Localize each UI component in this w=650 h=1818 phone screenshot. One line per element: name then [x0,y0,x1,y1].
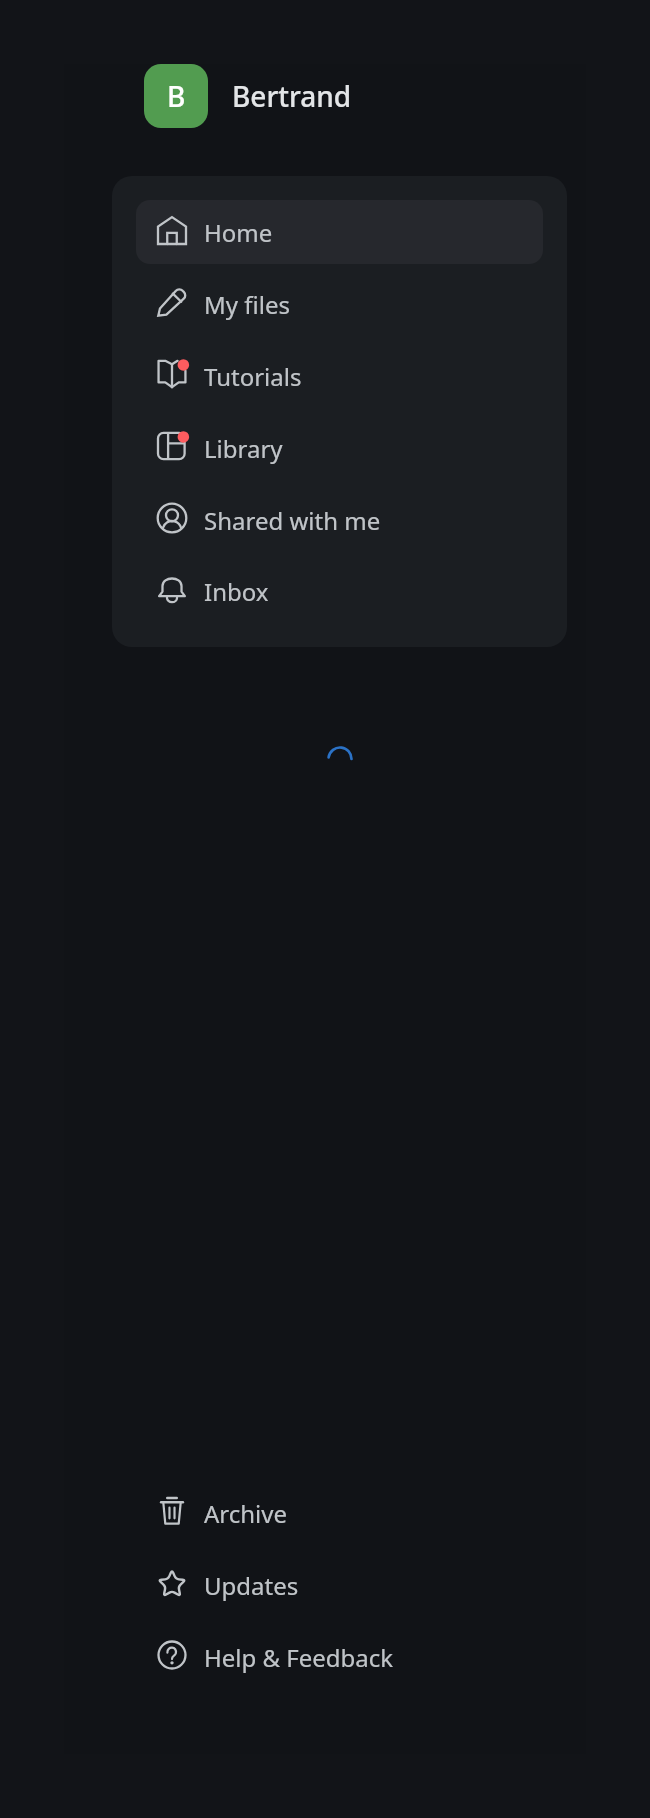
staticText: Tutorials [204,360,302,393]
button[interactable]: B [144,64,364,128]
button[interactable]: Inbox [136,560,543,623]
other: Loading [326,745,354,773]
staticText: Help & Feedback [204,1641,394,1674]
staticText: Bertrand [232,77,352,115]
button[interactable]: Library [136,416,543,480]
staticText: Updates [204,1569,299,1602]
button[interactable]: Updates [136,1553,543,1617]
button[interactable]: Home [136,200,543,264]
button[interactable]: Archive [136,1481,543,1545]
staticText: B [167,77,186,115]
staticText: Library [204,432,283,465]
staticText: My files [204,288,290,321]
staticText: Archive [204,1497,288,1530]
staticText: Shared with me [204,504,381,537]
button[interactable]: Shared with me [136,488,543,552]
button[interactable]: My files [136,272,543,336]
button[interactable]: Tutorials [136,344,543,408]
button[interactable]: Help & Feedback [136,1625,543,1689]
staticText: Inbox [204,575,269,608]
staticText: Home [204,216,273,249]
